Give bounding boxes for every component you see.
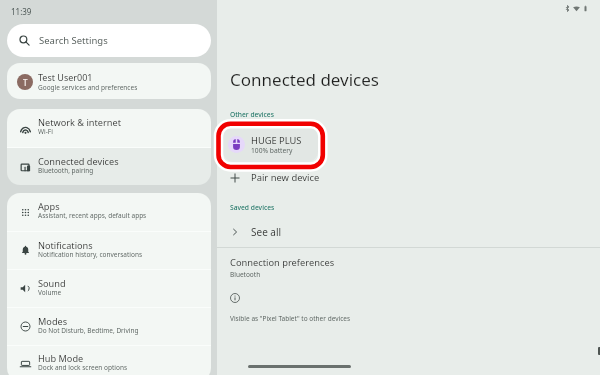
staticText: Saved devices	[230, 203, 275, 212]
staticText: Wi-Fi	[38, 127, 53, 136]
staticText: Hub Mode	[38, 352, 84, 365]
staticText: Notifications	[38, 239, 93, 252]
staticText: Do Not Disturb, Bedtime, Driving	[38, 326, 139, 335]
button[interactable]: Sound	[7, 270, 211, 307]
staticText: Test User001	[38, 71, 93, 83]
staticText: T	[23, 77, 28, 88]
button[interactable]: Network & internet	[7, 109, 211, 147]
staticText: Pair new device	[251, 171, 320, 184]
staticText: Apps	[38, 200, 60, 213]
button[interactable]: See all	[217, 220, 600, 244]
staticText: HUGE PLUS	[251, 134, 302, 147]
staticText: Other devices	[230, 110, 274, 119]
button[interactable]: Hub Mode	[7, 346, 211, 375]
button[interactable]: Search Settings	[7, 24, 211, 57]
staticText: See all	[251, 225, 282, 239]
button[interactable]: Modes	[7, 308, 211, 345]
staticText: Google services and preferences	[38, 83, 138, 92]
staticText: Sound	[38, 277, 66, 290]
staticText: Connected devices	[38, 155, 119, 168]
staticText: Bluetooth, pairing	[38, 166, 94, 175]
button[interactable]: Connection preferences	[217, 253, 600, 282]
button[interactable]: Apps	[7, 193, 211, 231]
staticText: Assistant, recent apps, default apps	[38, 211, 147, 220]
staticText: Visible as "Pixel Tablet" to other devic…	[230, 314, 351, 323]
staticText: Connection preferences	[230, 256, 335, 269]
staticText: Network & internet	[38, 116, 121, 129]
staticText: Bluetooth	[230, 270, 261, 279]
button[interactable]: Connected devices	[7, 148, 211, 185]
staticText: Notification history, conversations	[38, 250, 143, 259]
button[interactable]: T	[7, 63, 211, 99]
button[interactable]: Notifications	[7, 232, 211, 269]
staticText: Dock and lock screen options	[38, 363, 128, 372]
staticText: Connected devices	[230, 68, 380, 91]
staticText: Search Settings	[39, 34, 108, 47]
staticText: 11:39	[11, 6, 32, 17]
staticText: 100% battery	[251, 146, 293, 155]
staticText: Modes	[38, 315, 68, 328]
staticText: Volume	[38, 288, 62, 297]
button[interactable]: Pair new device	[217, 165, 600, 190]
button[interactable]: HUGE PLUS	[223, 127, 318, 162]
